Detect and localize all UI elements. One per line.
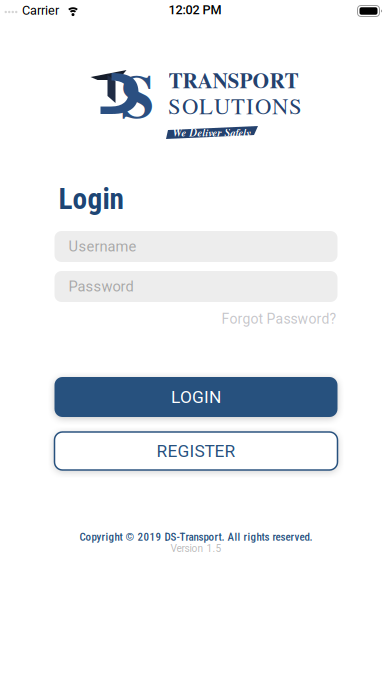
button[interactable]: REGISTER (54, 432, 337, 470)
staticText: Version 1.5 (170, 543, 221, 554)
staticText: Login (58, 182, 123, 216)
button[interactable]: LOGIN (54, 377, 337, 417)
staticText: Carrier (22, 3, 59, 18)
button[interactable]: Username (54, 231, 337, 262)
staticText: We Deliver Safely (172, 125, 251, 140)
staticText: S (120, 49, 154, 139)
staticText: Password (68, 278, 133, 295)
staticText: TRANSPORT (168, 64, 298, 95)
staticText: LOGIN (171, 387, 221, 407)
staticText: REGISTER (156, 441, 235, 461)
staticText: Copyright © 2019 DS-Transport. All right… (79, 530, 312, 543)
button[interactable]: Forgot Password? (221, 311, 336, 327)
staticText: Forgot Password? (221, 311, 336, 327)
staticText: Username (68, 238, 136, 255)
button[interactable]: Password (54, 271, 337, 302)
staticText: 12:02 PM (168, 3, 221, 17)
staticText: S O L U T I O N S (168, 90, 302, 121)
